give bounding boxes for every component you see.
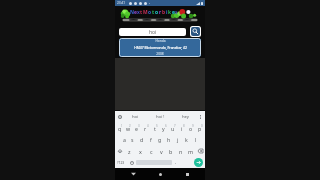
staticText: 8 — [183, 124, 185, 128]
staticText: t — [140, 9, 143, 16]
staticText: 5 — [156, 124, 158, 128]
staticText: hoi — [149, 29, 157, 36]
staticText: z — [128, 148, 131, 155]
staticText: m — [188, 148, 194, 155]
staticText: j — [177, 136, 179, 143]
button[interactable]: l — [191, 134, 200, 145]
button[interactable]: r — [141, 122, 150, 134]
button[interactable]: t — [150, 122, 159, 134]
button[interactable]: w — [124, 122, 132, 134]
button[interactable]: q — [116, 122, 124, 134]
staticText: l — [195, 136, 197, 143]
button[interactable]: b — [166, 145, 176, 157]
button[interactable]: hoi — [119, 28, 186, 36]
staticText: v — [160, 148, 163, 155]
button[interactable]: o — [186, 122, 195, 134]
staticText: hey — [182, 114, 190, 120]
staticText: 2 — [129, 124, 131, 128]
staticText: y — [162, 125, 165, 132]
button[interactable]: g — [155, 134, 164, 145]
staticText: . — [175, 159, 177, 166]
staticText: o — [155, 9, 159, 16]
staticText: d — [140, 136, 144, 143]
staticText: 4 — [147, 124, 149, 128]
staticText: s — [131, 136, 134, 143]
staticText: a — [123, 136, 126, 143]
staticText: r — [159, 9, 162, 16]
button[interactable]: z — [124, 145, 135, 157]
button[interactable]: f — [146, 134, 155, 145]
button[interactable]: . — [172, 157, 180, 168]
button[interactable]: v — [156, 145, 166, 157]
staticText: 7 — [174, 124, 176, 128]
staticText: ?123 — [117, 160, 125, 165]
staticText: i — [166, 9, 168, 16]
staticText: Honda — [155, 39, 166, 43]
button[interactable]: Backspace — [196, 145, 205, 157]
staticText: h — [167, 136, 171, 143]
staticText: o — [148, 9, 152, 16]
button[interactable]: Home — [151, 168, 169, 180]
staticText: HM47 Motormondo, Franeker, 42 — [134, 45, 187, 50]
button[interactable]: y — [159, 122, 168, 134]
staticText: e — [135, 125, 138, 132]
staticText: s — [175, 9, 178, 16]
button[interactable]: s — [128, 134, 137, 145]
button[interactable]: Emoji — [127, 157, 136, 168]
button[interactable]: Send — [192, 157, 205, 168]
staticText: b — [169, 148, 173, 155]
staticText: k — [168, 9, 172, 16]
staticText: M — [143, 9, 148, 16]
staticText: hoi — [132, 114, 139, 120]
button[interactable]: u — [168, 122, 177, 134]
button[interactable]: Shift — [115, 145, 124, 157]
staticText: N — [130, 9, 134, 16]
staticText: f — [150, 136, 152, 143]
staticText: p — [198, 125, 202, 132]
staticText: x — [137, 9, 140, 16]
staticText: w — [126, 125, 131, 132]
button[interactable]: x — [135, 145, 146, 157]
staticText: x — [139, 148, 142, 155]
button[interactable]: Back — [124, 168, 142, 180]
staticText: i — [181, 125, 183, 132]
staticText: q — [118, 125, 122, 132]
button[interactable]: Voice — [117, 114, 122, 119]
button[interactable]: m — [186, 145, 196, 157]
staticText: o — [189, 125, 193, 132]
staticText: 1 — [121, 124, 123, 128]
staticText: t — [152, 9, 155, 16]
staticText: e — [172, 9, 175, 16]
button[interactable]: p — [195, 122, 204, 134]
staticText: r — [144, 125, 147, 132]
staticText: k — [185, 136, 188, 143]
staticText: 23:41 — [117, 1, 126, 5]
button[interactable]: i — [177, 122, 186, 134]
button[interactable]: More suggestions — [198, 114, 203, 119]
button[interactable]: n — [176, 145, 186, 157]
button[interactable]: k — [182, 134, 191, 145]
staticText: e — [134, 9, 137, 16]
button[interactable]: e — [132, 122, 141, 134]
button[interactable]: c — [146, 145, 156, 157]
button[interactable]: ?123 — [115, 157, 127, 168]
button[interactable]: d — [137, 134, 146, 145]
staticText: u — [171, 125, 175, 132]
button[interactable]: h — [164, 134, 173, 145]
staticText: 3 — [138, 124, 140, 128]
button[interactable]: j — [173, 134, 182, 145]
staticText: c — [150, 148, 153, 155]
staticText: 6 — [165, 124, 167, 128]
button[interactable]: Honda — [119, 38, 201, 57]
staticText: 0 — [201, 124, 203, 128]
button[interactable]: Search — [191, 27, 200, 36]
staticText: hoi ! — [156, 114, 165, 120]
staticText: 2008 — [156, 52, 164, 56]
button[interactable]: Recents — [178, 168, 196, 180]
staticText: 9 — [192, 124, 194, 128]
button[interactable]: a — [120, 134, 128, 145]
staticText: b — [162, 9, 166, 16]
staticText: g — [158, 136, 162, 143]
staticText: t — [154, 125, 156, 132]
